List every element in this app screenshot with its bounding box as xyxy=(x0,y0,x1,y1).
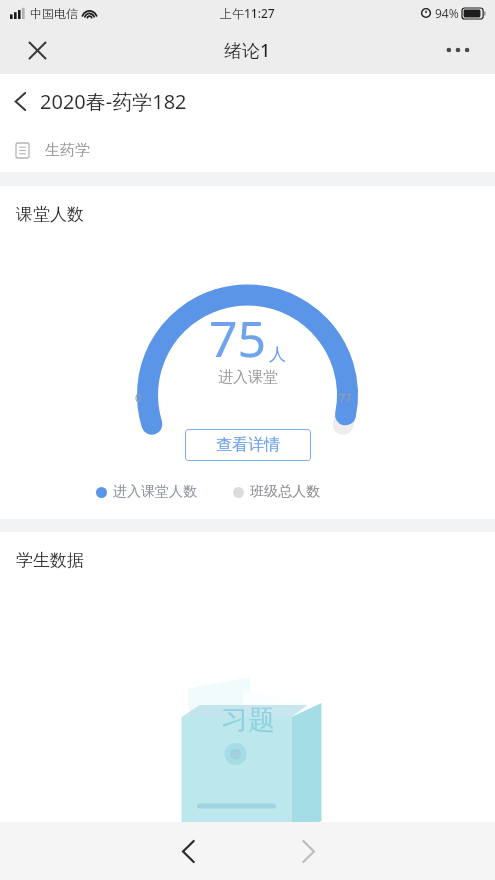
staticText: 生药学 xyxy=(45,141,90,160)
staticText: 75 xyxy=(209,304,267,372)
staticText: 0 xyxy=(135,390,142,405)
staticText: 课堂人数 xyxy=(16,204,84,225)
staticText: 77 xyxy=(339,390,352,405)
staticText: 查看详情 xyxy=(216,435,280,455)
button[interactable]: Close xyxy=(14,27,60,73)
staticText: 习题 xyxy=(221,703,275,737)
button[interactable]: 2020春-药学182 xyxy=(0,74,495,128)
staticText: 中国电信 xyxy=(30,6,78,21)
staticText: 班级总人数 xyxy=(250,483,320,501)
button[interactable]: Previous xyxy=(164,827,212,875)
staticText: 人 xyxy=(269,344,286,365)
staticText: 学生数据 xyxy=(16,550,84,571)
staticText: 上午11:27 xyxy=(220,5,275,21)
staticText: 进入课堂 xyxy=(218,368,278,387)
staticText: 绪论1 xyxy=(224,38,271,63)
button[interactable]: More options xyxy=(435,27,481,73)
staticText: 进入课堂人数 xyxy=(113,483,197,501)
staticText: 2020春-药学182 xyxy=(40,88,187,115)
staticText: 94% xyxy=(435,5,459,21)
button[interactable]: 查看详情 xyxy=(185,429,311,461)
button[interactable]: Next xyxy=(284,827,332,875)
